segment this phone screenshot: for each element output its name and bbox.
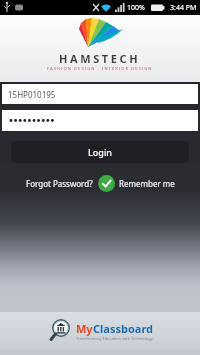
staticText: HAMSTECH	[59, 51, 141, 66]
button[interactable]: Forgot Password?	[26, 178, 93, 189]
button[interactable]: My	[47, 318, 154, 344]
button[interactable]: 15HP010195	[2, 84, 198, 104]
staticText: 3:44 PM	[170, 3, 197, 13]
staticText: 15HP010195	[8, 89, 56, 100]
button[interactable]: Remember me	[119, 178, 175, 189]
button[interactable]	[2, 110, 198, 131]
staticText: Forgot Password?	[26, 178, 93, 189]
button[interactable]: Login	[11, 141, 189, 163]
staticText: My	[76, 321, 93, 336]
staticText: Classboard	[93, 321, 154, 336]
staticText: Remember me	[119, 178, 175, 189]
staticText: Transforming Education with Technology	[76, 336, 153, 341]
staticText: 100%	[127, 3, 145, 13]
button[interactable]	[98, 175, 115, 192]
staticText: Login	[88, 146, 112, 158]
staticText: FASHION DESIGN - INTERIOR DESIGN	[47, 66, 153, 71]
